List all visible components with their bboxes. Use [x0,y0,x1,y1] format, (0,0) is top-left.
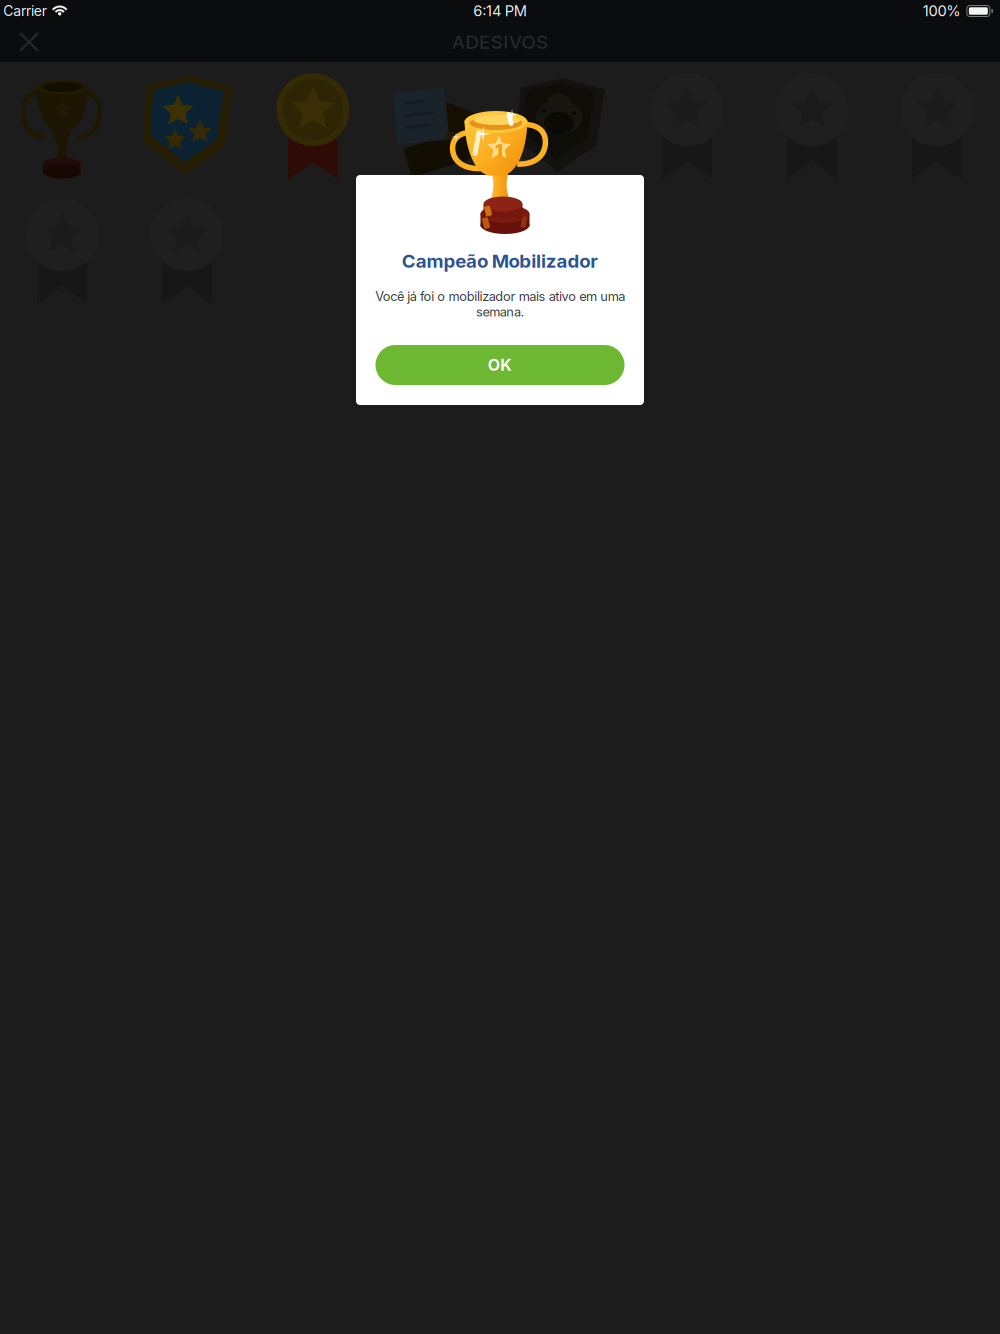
staticText: ADESIVOS [452,31,548,53]
staticText: 6:14 PM [473,2,527,20]
staticText: 1 [495,140,503,161]
staticText: Campeão Mobilizador [402,250,598,272]
staticText: 100% [923,2,960,20]
staticText: Você já foi o mobilizador mais ativo em … [375,288,625,319]
staticText: OK [488,355,512,375]
button[interactable]: Close [9,22,49,62]
button[interactable]: OK [375,345,624,385]
staticText: Carrier [3,2,47,19]
